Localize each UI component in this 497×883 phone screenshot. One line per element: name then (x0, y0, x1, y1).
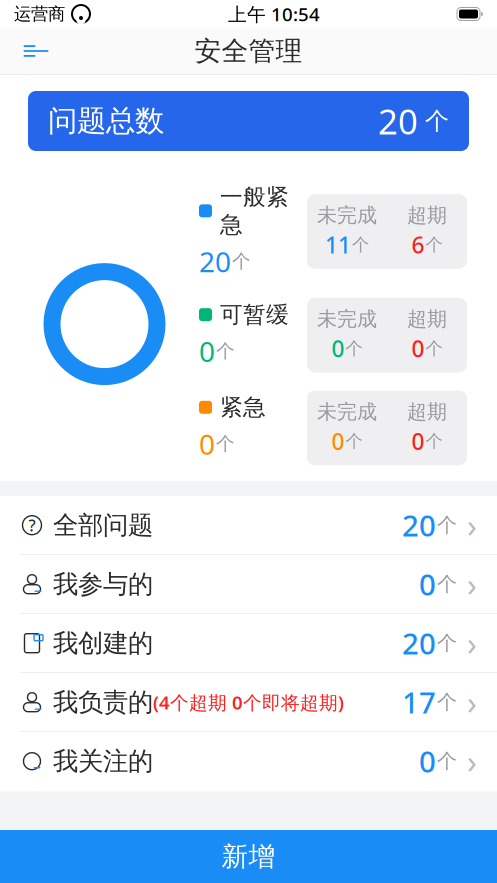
button[interactable]: ? (0, 496, 497, 555)
button[interactable]: 我关注的 (0, 732, 497, 791)
staticText: 个 (437, 690, 457, 714)
staticText: 20 (378, 98, 418, 144)
staticText: 超期 (407, 399, 447, 424)
staticText: 个 (216, 340, 235, 363)
staticText: 超期 (407, 203, 447, 228)
staticText: 可暂缓 (220, 301, 289, 328)
staticText: 个 (232, 250, 251, 273)
staticText: 超期 (407, 307, 447, 331)
staticText: › (467, 681, 477, 723)
staticText: 6 (411, 230, 424, 260)
button[interactable]: 我创建的 (0, 614, 497, 673)
staticText: 紧急 (220, 393, 266, 421)
staticText: 个 (425, 338, 442, 359)
staticText: 安全管理 (194, 35, 302, 67)
staticText: 11 (325, 230, 351, 260)
staticText: 我参与的 (53, 569, 153, 600)
staticText: 运营商 (14, 3, 65, 25)
staticText: › (467, 740, 477, 782)
staticText: 0 (199, 332, 215, 370)
staticText: 个 (418, 106, 449, 136)
staticText: 0 (411, 333, 424, 363)
button[interactable]: Back (14, 29, 58, 73)
staticText: 未完成 (317, 399, 377, 424)
staticText: › (467, 504, 477, 546)
staticText: 17 (402, 683, 436, 722)
staticText: 未完成 (317, 307, 377, 331)
staticText: 个 (437, 572, 457, 596)
staticText: 0 (419, 742, 436, 781)
staticText: 我负责的 (53, 687, 153, 718)
staticText: 新增 (221, 840, 275, 873)
staticText: 0 (419, 565, 436, 604)
staticText: › (467, 563, 477, 605)
staticText: 0 (331, 426, 344, 456)
staticText: 0 (199, 425, 215, 462)
staticText: › (467, 622, 477, 664)
staticText: 个 (345, 338, 362, 359)
staticText: 个 (437, 749, 457, 773)
button[interactable]: 新增 (0, 830, 497, 883)
staticText: 全部问题 (53, 510, 153, 541)
staticText: 我关注的 (53, 746, 153, 777)
staticText: 个 (425, 430, 442, 452)
staticText: ? (28, 515, 35, 536)
staticText: (4个超期 0个即将超期) (153, 690, 344, 715)
staticText: 个 (437, 513, 457, 537)
staticText: 0 (331, 333, 344, 363)
staticText: 0 (411, 426, 424, 456)
staticText: 个 (345, 430, 362, 452)
staticText: 问题总数 (48, 103, 164, 139)
staticText: 个 (352, 234, 369, 255)
staticText: 我创建的 (53, 628, 153, 659)
button[interactable]: 我负责的 (0, 673, 497, 732)
button[interactable]: 我参与的 (0, 555, 497, 614)
staticText: 一般紧急 (220, 183, 289, 239)
staticText: 20 (402, 624, 436, 663)
staticText: 20 (199, 243, 231, 280)
staticText: 20 (402, 506, 436, 545)
staticText: 未完成 (317, 203, 377, 228)
staticText: 个 (425, 234, 442, 255)
staticText: 上午 10:54 (228, 2, 320, 26)
staticText: 个 (437, 631, 457, 655)
staticText: 个 (216, 432, 235, 455)
